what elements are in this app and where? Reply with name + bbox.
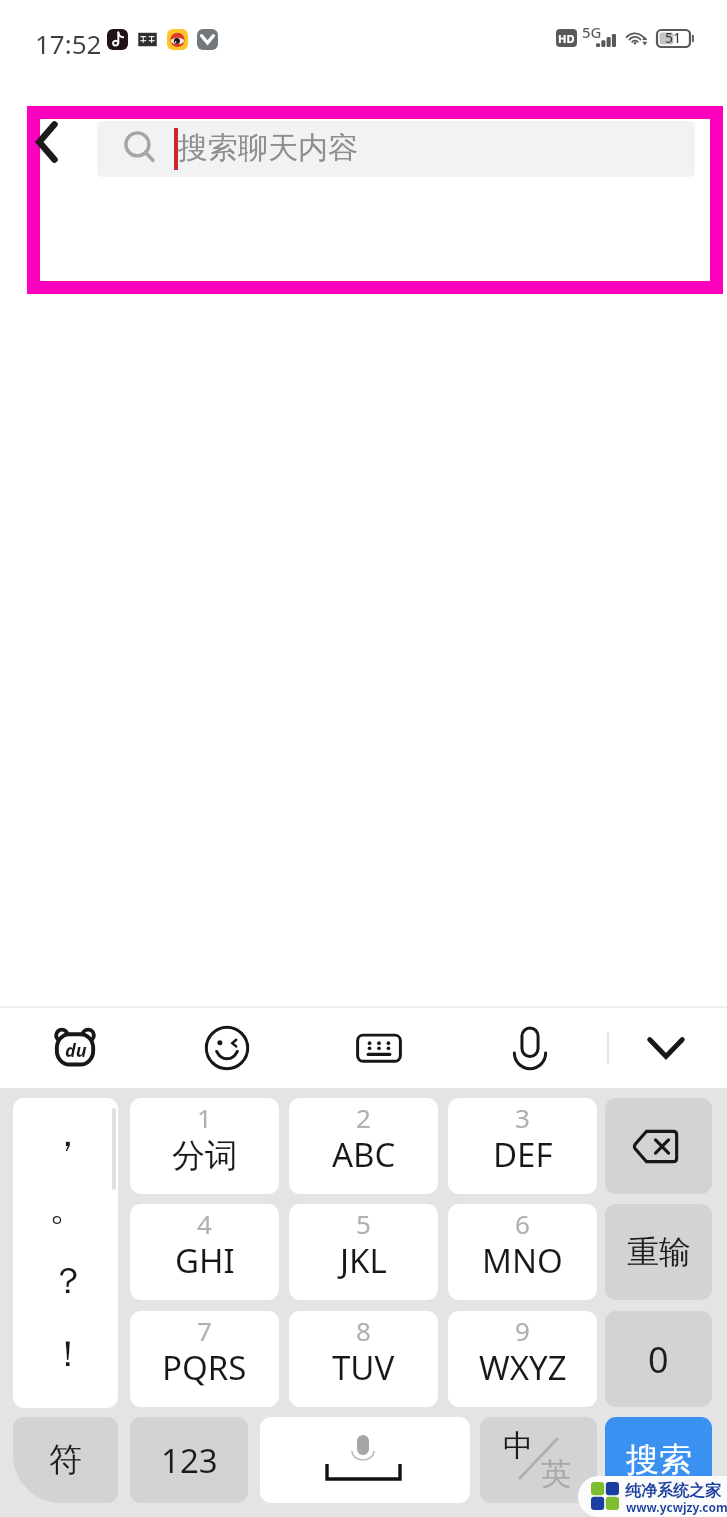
button[interactable]: 9 [448,1311,597,1407]
button[interactable]: Punctuation [13,1098,118,1408]
button[interactable]: 重输 [605,1204,712,1300]
staticText: 123 [161,1438,218,1483]
staticText: 5 [356,1206,371,1241]
staticText: 重输 [627,1232,691,1272]
staticText: 3 [515,1100,530,1135]
staticText: 6 [515,1206,530,1241]
staticText: 8 [356,1313,371,1348]
button[interactable]: Keyboard layout [339,1008,419,1088]
staticText: 分词 [172,1135,238,1177]
staticText: WXYZ [479,1345,567,1390]
staticText: 中 [503,1427,533,1465]
button[interactable]: Hide keyboard [626,1008,706,1088]
button[interactable]: Baidu input method [35,1008,115,1088]
staticText: 0 [648,1335,669,1384]
staticText: DEF [493,1132,553,1177]
staticText: 7 [197,1313,212,1348]
staticText: www.ycwjzy.com [626,1499,727,1515]
staticText: ！ [50,1331,86,1376]
staticText: 纯净系统之家 [625,1481,721,1501]
button[interactable]: 8 [289,1311,438,1407]
staticText: 搜索聊天内容 [178,129,358,167]
button[interactable]: Space [260,1417,470,1503]
button[interactable]: 3 [448,1098,597,1194]
button[interactable]: Back [24,116,74,172]
button[interactable]: 符 [13,1417,118,1503]
button[interactable]: Backspace [605,1098,712,1194]
staticText: 4 [197,1206,212,1241]
staticText: 英 [541,1455,571,1493]
button[interactable]: 5 [289,1204,438,1300]
staticText: GHI [175,1238,235,1283]
staticText: du [65,1038,87,1063]
staticText: ABC [332,1132,396,1177]
staticText: 搜索 [626,1439,692,1481]
staticText: PQRS [162,1345,247,1390]
staticText: 5G [582,22,602,42]
staticText: HD [558,31,575,46]
staticText: JKL [340,1238,387,1283]
button[interactable]: Chinese English toggle [480,1417,597,1503]
button[interactable]: 4 [130,1204,279,1300]
staticText: 2 [356,1100,371,1135]
staticText: 1 [197,1100,212,1135]
button[interactable]: 6 [448,1204,597,1300]
staticText: 。 [49,1183,87,1231]
staticText: MNO [482,1238,563,1283]
button[interactable]: 0 [605,1311,712,1407]
staticText: TUV [332,1345,395,1390]
button[interactable]: Voice input [490,1008,570,1088]
staticText: 符 [49,1439,82,1481]
button[interactable]: 1 [130,1098,279,1194]
button[interactable]: 7 [130,1311,279,1407]
button[interactable]: 搜索 [605,1417,712,1503]
staticText: 9 [515,1313,530,1348]
staticText: ， [49,1110,86,1157]
button[interactable]: Emoji [187,1008,267,1088]
button[interactable]: 123 [130,1417,248,1503]
button[interactable]: 2 [289,1098,438,1194]
staticText: 51 [665,28,682,47]
button[interactable]: 搜索聊天内容 [97,121,695,177]
staticText: 17:52 [35,26,102,61]
staticText: ？ [50,1258,86,1303]
